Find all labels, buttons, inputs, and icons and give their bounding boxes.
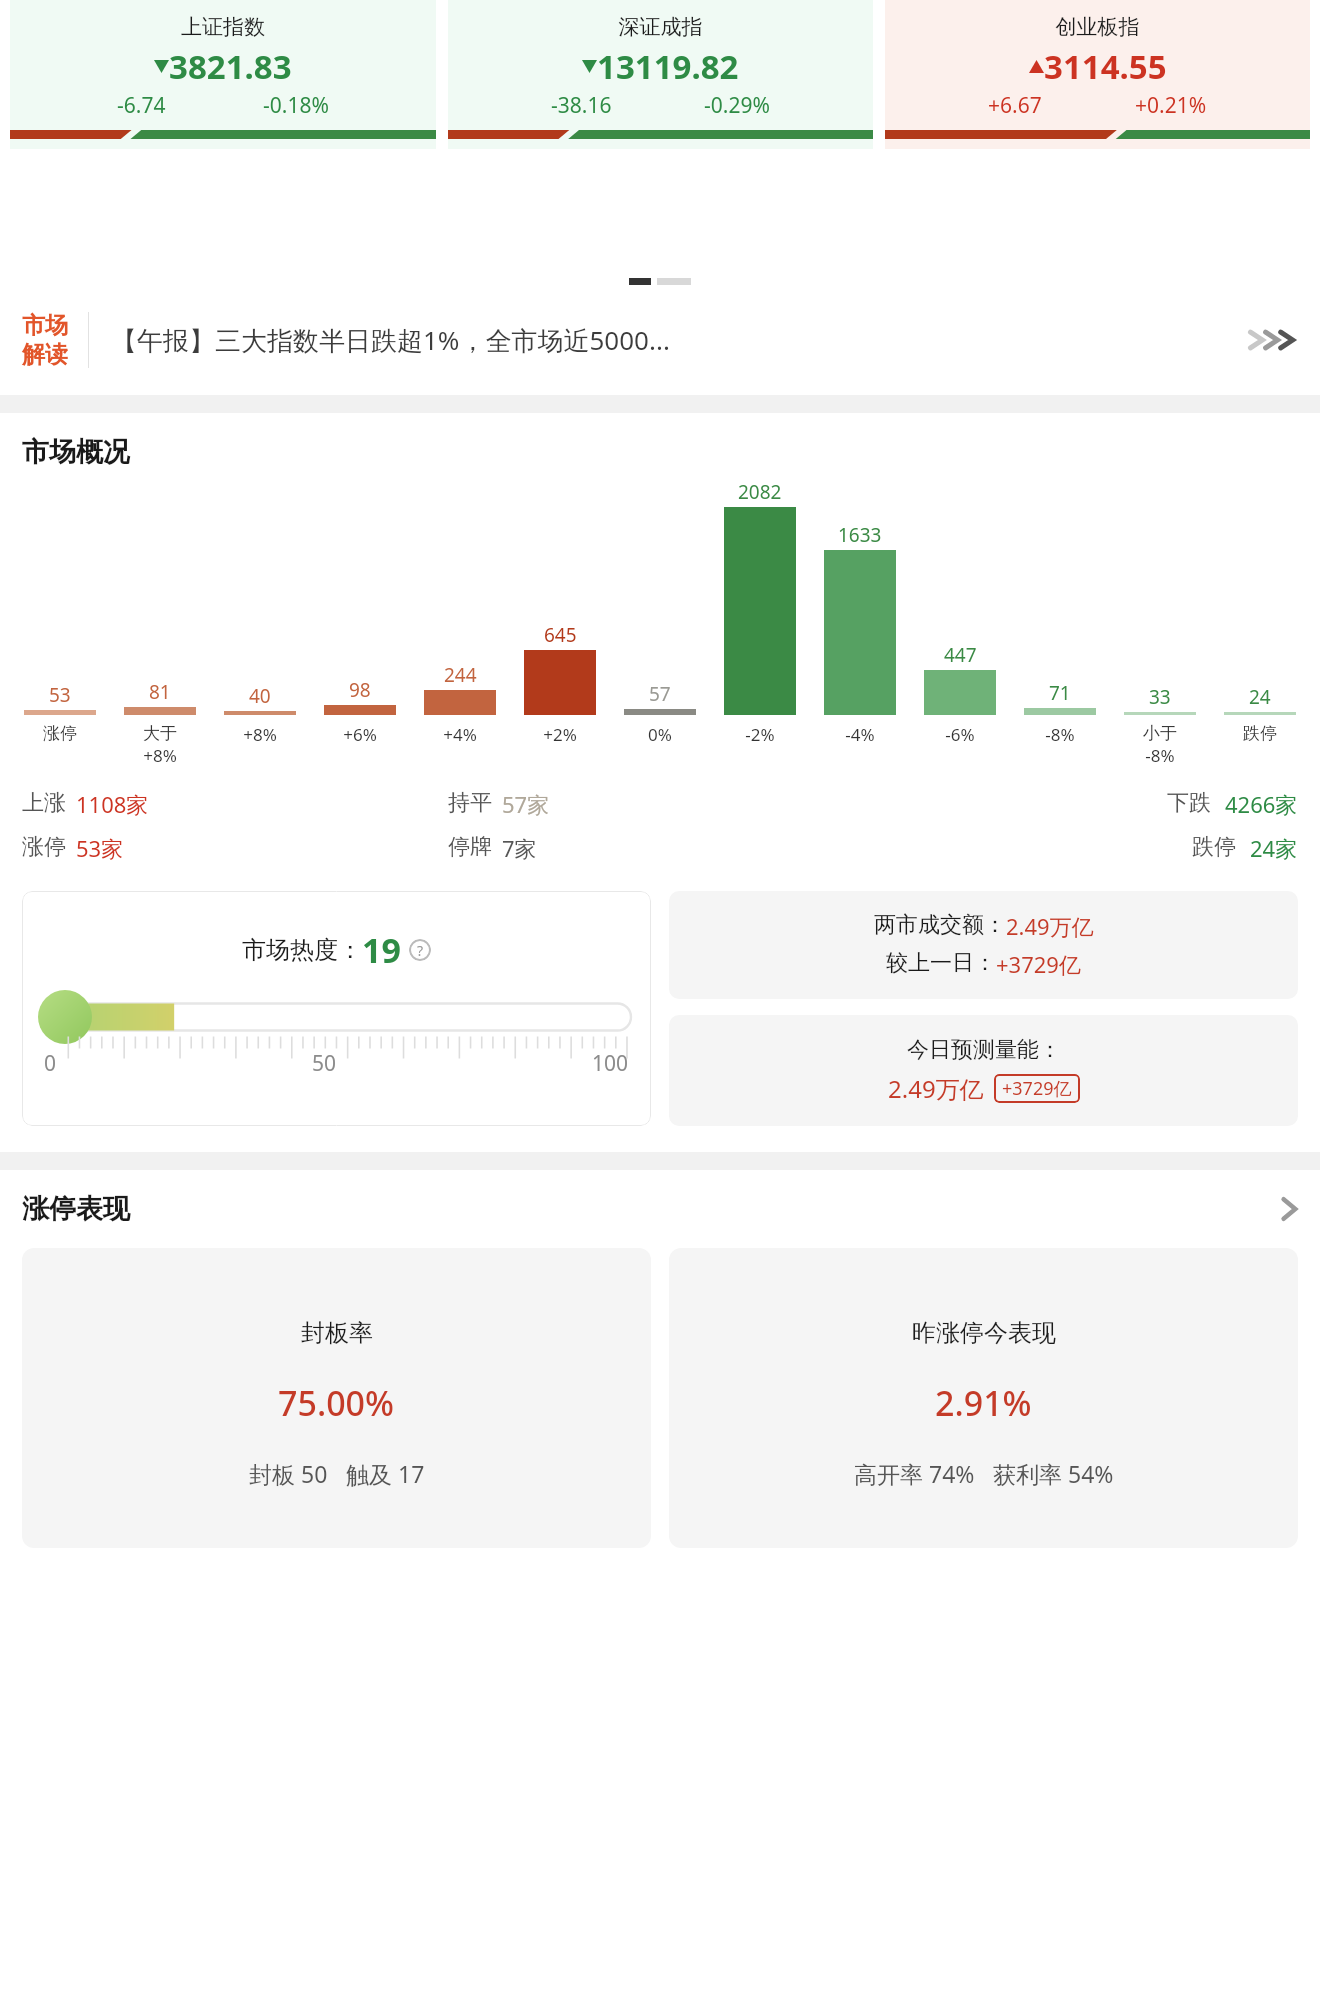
- staticText: 封板 50: [249, 1458, 328, 1489]
- staticText: 57家: [502, 789, 550, 819]
- staticText: 24: [1249, 684, 1271, 710]
- staticText: 小于: [1110, 723, 1210, 744]
- staticText: -4%: [810, 723, 910, 746]
- staticText: +0.21%: [1135, 91, 1207, 120]
- staticText: 98: [349, 677, 371, 703]
- staticText: 0%: [610, 723, 710, 746]
- button[interactable]: 市场: [0, 285, 1320, 395]
- staticText: +6.67: [988, 91, 1042, 120]
- staticText: 24家: [1250, 833, 1298, 863]
- staticText: 创业板指: [885, 14, 1310, 40]
- staticText: 2.91%: [935, 1380, 1032, 1426]
- staticText: +6%: [310, 723, 410, 746]
- staticText: 7家: [502, 833, 537, 863]
- staticText: 71: [1049, 680, 1071, 706]
- staticText: 50: [312, 1049, 337, 1078]
- staticText: +8%: [210, 723, 310, 746]
- button[interactable]: 两市成交额：: [669, 891, 1298, 999]
- staticText: 上证指数: [10, 14, 436, 40]
- staticText: 涨停表现: [22, 1192, 130, 1226]
- staticText: 3114.55: [1044, 44, 1167, 89]
- staticText: 持平: [448, 789, 492, 817]
- button[interactable]: 封板率: [22, 1248, 651, 1548]
- staticText: 封板率: [301, 1318, 373, 1348]
- staticText: +2%: [510, 723, 610, 746]
- staticText: +3729亿: [1002, 1076, 1072, 1101]
- staticText: 市场概况: [22, 435, 130, 469]
- staticText: 深证成指: [448, 14, 873, 40]
- staticText: 高开率 74%: [854, 1458, 975, 1489]
- staticText: 触及 17: [346, 1458, 425, 1489]
- staticText: 40: [249, 683, 271, 709]
- staticText: 447: [944, 642, 977, 668]
- staticText: 上涨: [22, 789, 66, 817]
- staticText: 今日预测量能：: [907, 1036, 1061, 1064]
- staticText: 13119.82: [597, 44, 739, 89]
- staticText: ?: [417, 941, 424, 960]
- staticText: 两市成交额：: [874, 911, 1006, 939]
- staticText: 2.49万亿: [888, 1072, 984, 1105]
- button[interactable]: 昨涨停今表现: [669, 1248, 1298, 1548]
- staticText: 较上一日：: [886, 949, 996, 977]
- staticText: 100: [592, 1049, 629, 1078]
- staticText: 大于: [110, 723, 210, 744]
- staticText: +4%: [410, 723, 510, 746]
- staticText: -8%: [1110, 744, 1210, 767]
- staticText: 1108家: [76, 789, 149, 819]
- staticText: 81: [149, 679, 171, 705]
- staticText: +8%: [110, 744, 210, 767]
- staticText: 昨涨停今表现: [912, 1318, 1056, 1348]
- staticText: 0: [44, 1049, 57, 1078]
- staticText: 跌停: [1210, 723, 1310, 744]
- button[interactable]: 深证成指: [448, 0, 873, 149]
- button[interactable]: 今日预测量能：: [669, 1015, 1298, 1126]
- staticText: -38.16: [551, 91, 612, 120]
- staticText: 2.49万亿: [1006, 911, 1094, 941]
- staticText: 【午报】三大指数半日跌超1%，全市场近5000...: [111, 322, 1234, 358]
- staticText: 33: [1149, 684, 1171, 710]
- button[interactable]: 说明: [409, 939, 431, 961]
- staticText: 解读: [22, 340, 68, 369]
- staticText: -6.74: [117, 91, 166, 120]
- staticText: 19: [362, 927, 401, 973]
- staticText: -2%: [710, 723, 810, 746]
- staticText: 涨停: [22, 833, 66, 861]
- button[interactable]: 创业板指: [885, 0, 1310, 149]
- staticText: 市场: [22, 311, 68, 340]
- staticText: 跌停: [1192, 833, 1236, 861]
- button[interactable]: 上证指数: [10, 0, 436, 149]
- staticText: 3821.83: [169, 44, 292, 89]
- staticText: -6%: [910, 723, 1010, 746]
- other: 更多资讯: [1244, 326, 1298, 354]
- staticText: 涨停: [10, 723, 110, 744]
- staticText: 4266家: [1225, 789, 1298, 819]
- staticText: -0.18%: [263, 91, 329, 120]
- staticText: 645: [544, 622, 577, 648]
- staticText: 市场热度：: [242, 935, 362, 965]
- staticText: 57: [649, 681, 671, 707]
- staticText: 75.00%: [278, 1380, 395, 1426]
- staticText: 2082: [738, 479, 782, 505]
- button[interactable]: 涨停表现: [0, 1192, 1320, 1226]
- staticText: 停牌: [448, 833, 492, 861]
- staticText: 下跌: [1167, 789, 1211, 817]
- staticText: 53: [49, 682, 71, 708]
- staticText: +3729亿: [996, 949, 1081, 979]
- other: 查看更多: [1280, 1195, 1298, 1223]
- staticText: 244: [444, 662, 477, 688]
- staticText: 1633: [838, 522, 882, 548]
- staticText: -0.29%: [704, 91, 770, 120]
- button[interactable]: 市场热度：: [22, 891, 651, 1126]
- staticText: 53家: [76, 833, 124, 863]
- staticText: -8%: [1010, 723, 1110, 746]
- staticText: 获利率 54%: [993, 1458, 1114, 1489]
